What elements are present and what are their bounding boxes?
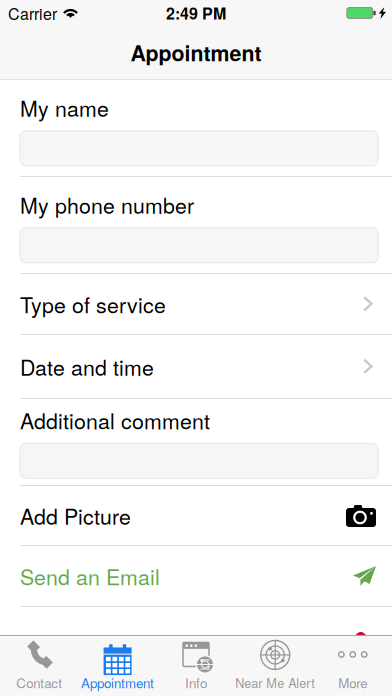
staticText: My name	[20, 92, 109, 123]
staticText: Near Me Alert	[235, 673, 315, 691]
button[interactable]: Info	[157, 636, 235, 696]
staticText: Add Picture	[20, 500, 131, 531]
button[interactable]: Near Me Alert	[235, 636, 314, 696]
button[interactable]: Send an Email	[0, 546, 392, 607]
button[interactable]: Add Picture	[0, 486, 392, 546]
staticText: My phone number	[20, 189, 194, 220]
button[interactable]: More	[314, 636, 392, 696]
staticText: Carrier	[8, 1, 57, 24]
staticText: More	[338, 673, 367, 692]
staticText: 2:49 PM	[166, 1, 226, 24]
button[interactable]: Type of service	[0, 274, 392, 335]
staticText: Appointment	[130, 37, 261, 68]
button[interactable]: Appointment	[78, 636, 157, 696]
staticText: Appointment	[81, 673, 154, 692]
staticText: Additional comment	[20, 405, 210, 435]
button[interactable]: Date and time	[0, 335, 392, 399]
button[interactable]: Contact	[0, 636, 78, 696]
staticText: Info	[185, 673, 207, 692]
staticText: Type of service	[20, 289, 166, 319]
staticText: Date and time	[20, 351, 154, 382]
staticText: Send an Email	[20, 561, 160, 591]
staticText: Contact	[16, 673, 62, 692]
